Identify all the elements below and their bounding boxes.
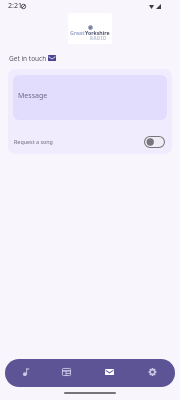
staticText: Request a song [14, 138, 53, 145]
button[interactable]: Music [8, 359, 45, 387]
staticText: Get in touch [9, 54, 47, 63]
staticText: RADIO [90, 35, 107, 41]
staticText: 2:21 [8, 1, 22, 11]
staticText: Yorkshire [85, 29, 110, 36]
button[interactable]: Request a song [8, 132, 172, 151]
button[interactable]: Settings [134, 359, 171, 387]
button[interactable]: Message [13, 75, 167, 120]
staticText: Message [18, 91, 48, 101]
button[interactable]: Messages [91, 359, 128, 387]
button[interactable]: Get in touch [9, 51, 56, 65]
button[interactable]: Schedule [48, 359, 85, 387]
staticText: Great [70, 29, 85, 36]
